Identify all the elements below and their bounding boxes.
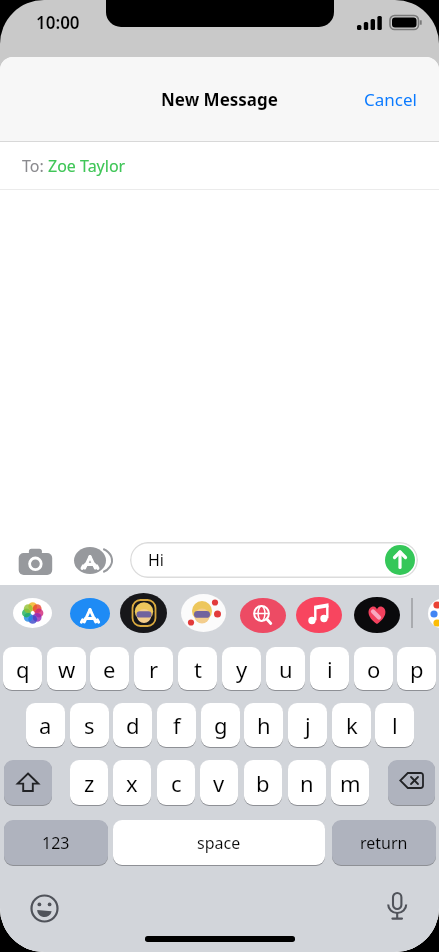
button[interactable]: s (70, 703, 109, 747)
button[interactable]: Cancel (356, 80, 425, 119)
staticText: p (410, 654, 424, 684)
staticText: f (173, 710, 181, 740)
button[interactable]: n (288, 760, 326, 805)
button[interactable]: i (310, 647, 349, 690)
button[interactable] (14, 545, 58, 579)
staticText: return (360, 832, 408, 854)
button[interactable]: To: (0, 142, 439, 190)
button[interactable]: e (90, 647, 129, 690)
staticText: y (236, 654, 248, 684)
button[interactable]: f (157, 703, 196, 747)
staticText: r (149, 654, 159, 684)
staticText: 123 (42, 832, 70, 854)
staticText: b (256, 768, 270, 798)
staticText: New Message (161, 88, 278, 111)
button[interactable]: j (288, 703, 327, 747)
staticText: Cancel (364, 88, 417, 111)
button[interactable]: z (70, 760, 108, 805)
staticText: Hi (148, 549, 164, 571)
button[interactable] (428, 598, 439, 628)
button[interactable]: l (375, 703, 414, 747)
button[interactable] (70, 598, 110, 629)
button[interactable]: space (113, 820, 325, 865)
staticText: m (340, 768, 361, 798)
staticText: o (367, 654, 381, 684)
button[interactable]: 123 (4, 820, 108, 865)
button[interactable]: x (113, 760, 151, 805)
button[interactable] (388, 760, 435, 805)
button[interactable]: h (244, 703, 283, 747)
button[interactable]: o (354, 647, 393, 690)
staticText: j (305, 710, 311, 740)
staticText: g (214, 710, 228, 740)
staticText: c (171, 768, 182, 798)
staticText: l (392, 710, 398, 740)
staticText: d (126, 710, 140, 740)
button[interactable] (70, 543, 118, 579)
staticText: e (103, 654, 116, 684)
staticText: Zoe Taylor (48, 155, 126, 177)
staticText: v (213, 768, 225, 798)
button[interactable] (380, 890, 414, 924)
button[interactable] (354, 597, 400, 633)
button[interactable]: d (113, 703, 152, 747)
button[interactable] (120, 593, 167, 633)
staticText: 10:00 (36, 11, 80, 34)
button[interactable]: r (134, 647, 173, 690)
button[interactable]: u (266, 647, 305, 690)
button[interactable]: a (26, 703, 65, 747)
staticText: a (39, 710, 52, 740)
button[interactable] (4, 760, 52, 805)
staticText: n (300, 768, 314, 798)
staticText: k (346, 710, 358, 740)
staticText: t (194, 654, 202, 684)
button[interactable]: k (332, 703, 371, 747)
staticText: s (84, 710, 95, 740)
button[interactable] (385, 545, 415, 575)
staticText: w (58, 654, 76, 684)
button[interactable] (13, 598, 52, 628)
button[interactable]: w (47, 647, 86, 690)
button[interactable]: q (3, 647, 42, 690)
staticText: x (126, 768, 138, 798)
staticText: h (257, 710, 271, 740)
button[interactable]: m (331, 760, 369, 805)
button[interactable]: v (200, 760, 238, 805)
staticText: q (16, 654, 30, 684)
button[interactable] (181, 594, 226, 632)
button[interactable]: g (201, 703, 240, 747)
staticText: u (279, 654, 293, 684)
staticText: To: (22, 155, 48, 177)
button[interactable]: p (397, 647, 436, 690)
staticText: i (327, 654, 333, 684)
button[interactable] (28, 893, 61, 926)
button[interactable]: t (178, 647, 217, 690)
button[interactable]: return (332, 820, 436, 865)
button[interactable]: c (157, 760, 195, 805)
button[interactable] (240, 598, 286, 633)
button[interactable] (296, 597, 342, 633)
button[interactable]: Hi (130, 542, 418, 578)
button[interactable]: b (244, 760, 282, 805)
button[interactable]: y (222, 647, 261, 690)
staticText: z (84, 768, 95, 798)
staticText: space (197, 832, 241, 854)
